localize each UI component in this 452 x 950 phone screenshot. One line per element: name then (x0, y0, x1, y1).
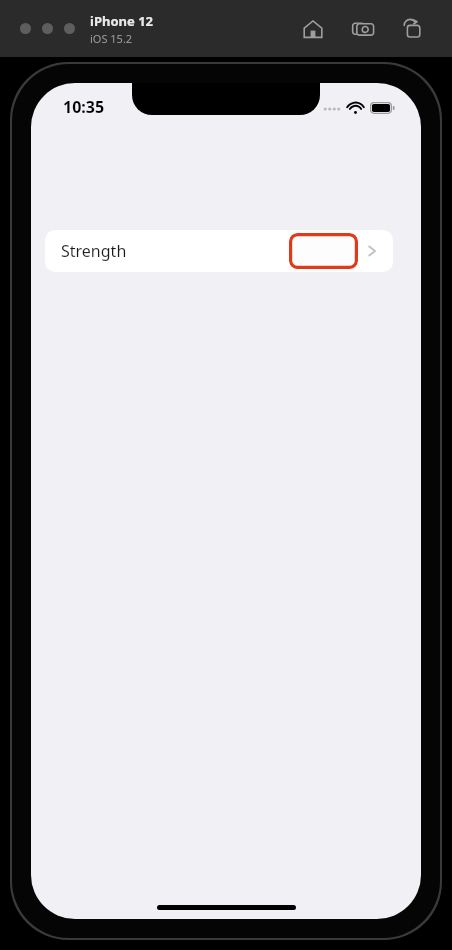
button[interactable]: Value field (289, 233, 358, 269)
staticText: Strength (61, 240, 127, 262)
button[interactable] (42, 23, 53, 34)
button[interactable] (20, 23, 31, 34)
staticText: 10:35 (63, 96, 105, 118)
other: Open Strength (364, 243, 380, 259)
staticText: iPhone 12 (90, 12, 153, 30)
staticText: iOS 15.2 (90, 31, 133, 46)
button[interactable]: Strength (45, 230, 393, 272)
button[interactable] (64, 23, 75, 34)
button[interactable]: Screenshot (346, 12, 380, 46)
button[interactable]: Rotate (396, 12, 430, 46)
button[interactable]: Home (296, 12, 330, 46)
